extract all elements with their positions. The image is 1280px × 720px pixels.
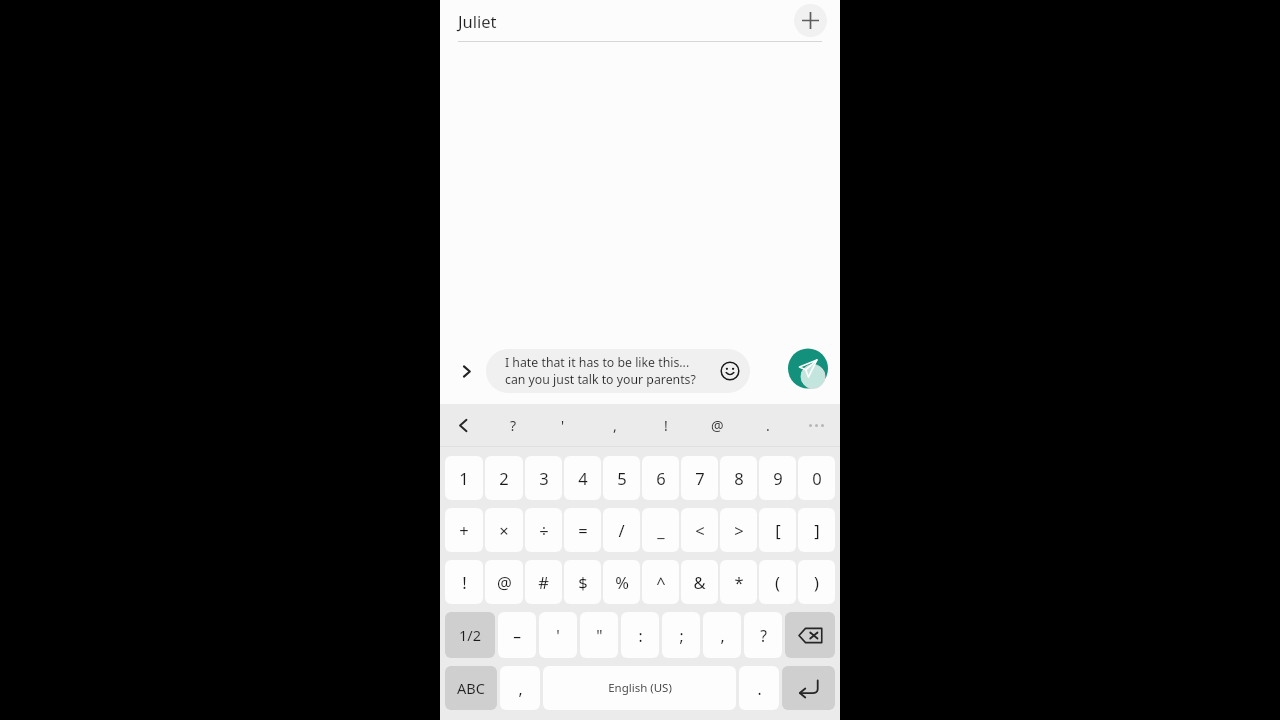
button[interactable]: / — [603, 508, 640, 552]
staticText: 4 — [578, 467, 588, 489]
button[interactable]: & — [681, 560, 718, 604]
button[interactable]: 2 — [485, 456, 523, 500]
button[interactable]: $ — [564, 560, 601, 604]
button[interactable]: * — [720, 560, 757, 604]
staticText: ; — [679, 625, 684, 646]
button[interactable]: ? — [497, 409, 529, 441]
button[interactable]: @ — [485, 560, 523, 604]
button[interactable]: ] — [798, 508, 835, 552]
button[interactable]: Send — [788, 349, 832, 393]
staticText: 0 — [812, 467, 822, 489]
staticText: 8 — [734, 467, 744, 489]
staticText: English (US) — [608, 680, 672, 696]
staticText: @ — [497, 571, 512, 593]
button[interactable]: More options — [801, 410, 831, 440]
staticText: ' — [561, 416, 565, 435]
button[interactable]: ? — [744, 612, 782, 658]
button[interactable]: English (US) — [543, 666, 736, 710]
staticText: . — [757, 678, 762, 699]
button[interactable]: 9 — [759, 456, 796, 500]
button[interactable]: ! — [650, 409, 682, 441]
staticText: ) — [814, 571, 819, 593]
button[interactable]: _ — [642, 508, 679, 552]
button[interactable]: ' — [547, 409, 579, 441]
staticText: , — [613, 416, 617, 435]
button[interactable]: ÷ — [525, 508, 562, 552]
button[interactable]: > — [720, 508, 757, 552]
button[interactable]: % — [603, 560, 640, 604]
button[interactable]: " — [580, 612, 618, 658]
button[interactable]: ABC — [445, 666, 497, 710]
staticText: 2 — [499, 467, 509, 489]
staticText: ^ — [656, 571, 666, 593]
staticText: 5 — [617, 467, 627, 489]
staticText: × — [499, 519, 509, 541]
button[interactable]: = — [564, 508, 601, 552]
button[interactable]: 1/2 — [445, 612, 495, 658]
staticText: # — [538, 571, 549, 593]
staticText: 3 — [539, 467, 549, 489]
staticText: < — [695, 519, 705, 541]
staticText: ' — [556, 625, 560, 646]
button[interactable]: < — [681, 508, 718, 552]
button[interactable]: ; — [662, 612, 700, 658]
button[interactable]: . — [739, 666, 779, 710]
button[interactable]: × — [485, 508, 523, 552]
button[interactable]: ^ — [642, 560, 679, 604]
staticText: ? — [760, 625, 767, 646]
button[interactable]: I hate that it has to be like this... — [486, 349, 750, 393]
staticText: can you just talk to your parents? — [505, 371, 696, 388]
button[interactable]: ! — [445, 560, 483, 604]
button[interactable]: Backspace — [785, 612, 835, 658]
button[interactable]: Expand — [450, 355, 482, 387]
button[interactable]: 5 — [603, 456, 640, 500]
staticText: " — [596, 625, 603, 646]
staticText: > — [734, 519, 744, 541]
button[interactable]: 3 — [525, 456, 562, 500]
staticText: ABC — [457, 678, 485, 698]
staticText: % — [615, 571, 629, 593]
staticText: * — [734, 571, 744, 593]
staticText: : — [638, 625, 643, 646]
staticText: $ — [578, 571, 588, 593]
button[interactable]: ' — [539, 612, 577, 658]
button[interactable]: . — [752, 409, 784, 441]
staticText: – — [513, 625, 521, 646]
staticText: , — [720, 625, 725, 646]
button[interactable]: Previous suggestions — [446, 408, 480, 442]
button[interactable]: – — [498, 612, 536, 658]
button[interactable]: ) — [798, 560, 835, 604]
staticText: 9 — [773, 467, 783, 489]
staticText: ! — [664, 416, 668, 435]
button[interactable]: 7 — [681, 456, 718, 500]
button[interactable]: Add — [794, 4, 827, 37]
staticText: ] — [814, 519, 820, 541]
button[interactable]: Enter — [782, 666, 835, 710]
button[interactable]: , — [500, 666, 540, 710]
button[interactable]: 6 — [642, 456, 679, 500]
staticText: + — [459, 519, 469, 541]
button[interactable]: , — [703, 612, 741, 658]
staticText: ? — [510, 416, 517, 435]
staticText: / — [618, 519, 625, 541]
staticText: = — [578, 519, 588, 541]
button[interactable]: , — [599, 409, 631, 441]
button[interactable]: Emoji — [717, 358, 743, 384]
button[interactable]: : — [621, 612, 659, 658]
button[interactable]: # — [525, 560, 562, 604]
button[interactable]: 4 — [564, 456, 601, 500]
button[interactable]: ( — [759, 560, 796, 604]
staticText: & — [693, 571, 706, 593]
button[interactable]: @ — [701, 409, 733, 441]
staticText: 7 — [695, 467, 705, 489]
staticText: Juliet — [458, 10, 497, 32]
staticText: 1 — [459, 467, 469, 489]
staticText: , — [518, 678, 523, 699]
button[interactable]: 0 — [798, 456, 835, 500]
button[interactable]: 1 — [445, 456, 483, 500]
button[interactable]: [ — [759, 508, 796, 552]
staticText: ! — [462, 571, 467, 593]
button[interactable]: + — [445, 508, 483, 552]
staticText: I hate that it has to be like this... — [505, 354, 690, 371]
button[interactable]: 8 — [720, 456, 757, 500]
